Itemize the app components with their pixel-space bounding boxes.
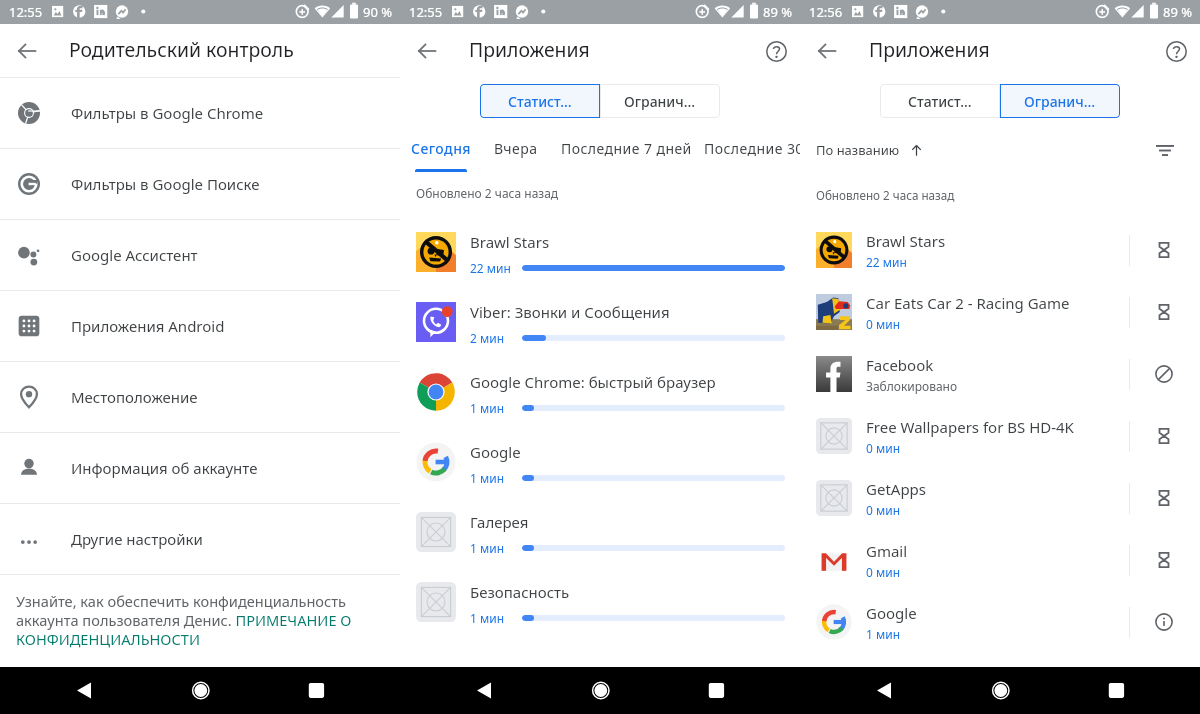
button[interactable]: Последние 7 дней xyxy=(549,139,704,172)
staticText: 1 мин xyxy=(470,400,505,416)
button[interactable]: Back xyxy=(403,27,451,75)
staticText: 0 мин xyxy=(866,440,901,456)
staticText: 1 мин xyxy=(470,540,505,556)
staticText: Brawl Stars xyxy=(470,232,550,252)
button[interactable]: Back xyxy=(803,27,851,75)
staticText: Огранич… xyxy=(624,92,696,111)
button[interactable]: Free Wallpapers for BS HD-4K xyxy=(800,405,1200,467)
staticText: Обновлено 2 часа назад xyxy=(416,185,559,201)
button[interactable]: Back xyxy=(3,27,51,75)
button[interactable]: Brawl Stars xyxy=(400,217,800,287)
button[interactable]: Местоположение xyxy=(0,362,400,432)
staticText: Google xyxy=(470,442,521,462)
button[interactable]: Галерея xyxy=(400,497,800,567)
staticText: Местоположение xyxy=(71,387,198,407)
staticText: Google xyxy=(866,603,917,623)
button[interactable]: hourglass xyxy=(1130,281,1200,343)
staticText: 12:56 xyxy=(809,3,843,21)
staticText: 0 мин xyxy=(866,564,901,580)
button[interactable]: Сегодня xyxy=(400,139,482,172)
staticText: Приложения Android xyxy=(71,316,225,336)
staticText: Google Chrome: быстрый браузер xyxy=(470,372,716,392)
button[interactable]: Brawl Stars xyxy=(800,219,1200,281)
staticText: Brawl Stars xyxy=(866,231,946,251)
button[interactable]: Последние 30 дней xyxy=(704,139,800,172)
staticText: Google Ассистент xyxy=(71,245,198,265)
staticText: 12:55 xyxy=(9,3,43,21)
staticText: Обновлено 2 часа назад xyxy=(816,187,955,203)
button[interactable]: Вчера xyxy=(482,139,549,172)
staticText: 90 % xyxy=(363,3,393,21)
button[interactable]: Facebook xyxy=(800,343,1200,405)
button[interactable]: Приложения Android xyxy=(0,291,400,361)
staticText: Car Eats Car 2 - Racing Game xyxy=(866,293,1070,313)
button[interactable]: Информация об аккаунте xyxy=(0,433,400,503)
staticText: Безопасность xyxy=(470,582,570,602)
button[interactable]: Filter xyxy=(1145,132,1185,168)
button[interactable]: Help xyxy=(1152,27,1200,75)
staticText: Последние 30 дней xyxy=(704,139,800,158)
staticText: Статист… xyxy=(908,92,972,111)
staticText: 0 мин xyxy=(866,316,901,332)
staticText: 12:55 xyxy=(409,3,443,21)
button[interactable]: Recent apps xyxy=(696,671,736,711)
staticText: Узнайте, как обеспечить конфиденциальнос… xyxy=(16,591,368,649)
staticText: GetApps xyxy=(866,479,927,499)
button[interactable]: Фильтры в Google Chrome xyxy=(0,78,400,148)
staticText: По названию xyxy=(816,141,900,159)
button[interactable]: Огранич… xyxy=(1000,84,1120,118)
staticText: Приложения xyxy=(869,36,990,62)
button[interactable]: Огранич… xyxy=(600,84,720,118)
staticText: Информация об аккаунте xyxy=(71,458,258,478)
button[interactable]: Back xyxy=(464,671,504,711)
button[interactable]: Статист… xyxy=(880,84,1000,118)
staticText: Другие настройки xyxy=(71,529,203,549)
staticText: Приложения xyxy=(469,36,590,62)
button[interactable]: Google xyxy=(800,591,1200,653)
button[interactable]: Recent apps xyxy=(296,671,336,711)
staticText: 1 мин xyxy=(470,470,505,486)
staticText: 89 % xyxy=(763,3,793,21)
button[interactable]: hourglass xyxy=(1130,529,1200,591)
button[interactable]: hourglass xyxy=(1130,219,1200,281)
button[interactable]: hourglass xyxy=(1130,405,1200,467)
staticText: Заблокировано xyxy=(866,378,958,394)
button[interactable]: По названию xyxy=(816,141,923,159)
button[interactable]: Home xyxy=(580,671,620,711)
button[interactable]: Help xyxy=(752,27,800,75)
staticText: Родительский контроль xyxy=(69,36,294,62)
button[interactable]: Google Ассистент xyxy=(0,220,400,290)
staticText: 1 мин xyxy=(470,610,505,626)
button[interactable]: Фильтры в Google Поиске xyxy=(0,149,400,219)
button[interactable]: Home xyxy=(180,671,220,711)
staticText: 89 % xyxy=(1163,3,1193,21)
button[interactable]: hourglass xyxy=(1130,467,1200,529)
button[interactable]: Статист… xyxy=(480,84,600,118)
staticText: Галерея xyxy=(470,512,529,532)
staticText: Вчера xyxy=(494,139,538,158)
button[interactable]: GetApps xyxy=(800,467,1200,529)
button[interactable]: blocked xyxy=(1130,343,1200,405)
button[interactable]: Gmail xyxy=(800,529,1200,591)
staticText: Огранич… xyxy=(1024,92,1096,111)
staticText: Фильтры в Google Поиске xyxy=(71,174,260,194)
staticText: 2 мин xyxy=(470,330,505,346)
staticText: Последние 7 дней xyxy=(561,139,692,158)
button[interactable]: Back xyxy=(864,671,904,711)
button[interactable]: Другие настройки xyxy=(0,504,400,574)
button[interactable]: Google xyxy=(400,427,800,497)
button[interactable]: info xyxy=(1130,591,1200,653)
staticText: Фильтры в Google Chrome xyxy=(71,103,264,123)
button[interactable]: Безопасность xyxy=(400,567,800,637)
staticText: 0 мин xyxy=(866,502,901,518)
button[interactable]: Back xyxy=(64,671,104,711)
staticText: Статист… xyxy=(508,92,572,111)
button[interactable]: Car Eats Car 2 - Racing Game xyxy=(800,281,1200,343)
staticText: Free Wallpapers for BS HD-4K xyxy=(866,417,1074,437)
button[interactable]: Google Chrome: быстрый браузер xyxy=(400,357,800,427)
button[interactable]: Recent apps xyxy=(1096,671,1136,711)
button[interactable]: Home xyxy=(980,671,1020,711)
staticText: Viber: Звонки и Сообщения xyxy=(470,302,670,322)
button[interactable]: Viber: Звонки и Сообщения xyxy=(400,287,800,357)
staticText: Gmail xyxy=(866,541,908,561)
